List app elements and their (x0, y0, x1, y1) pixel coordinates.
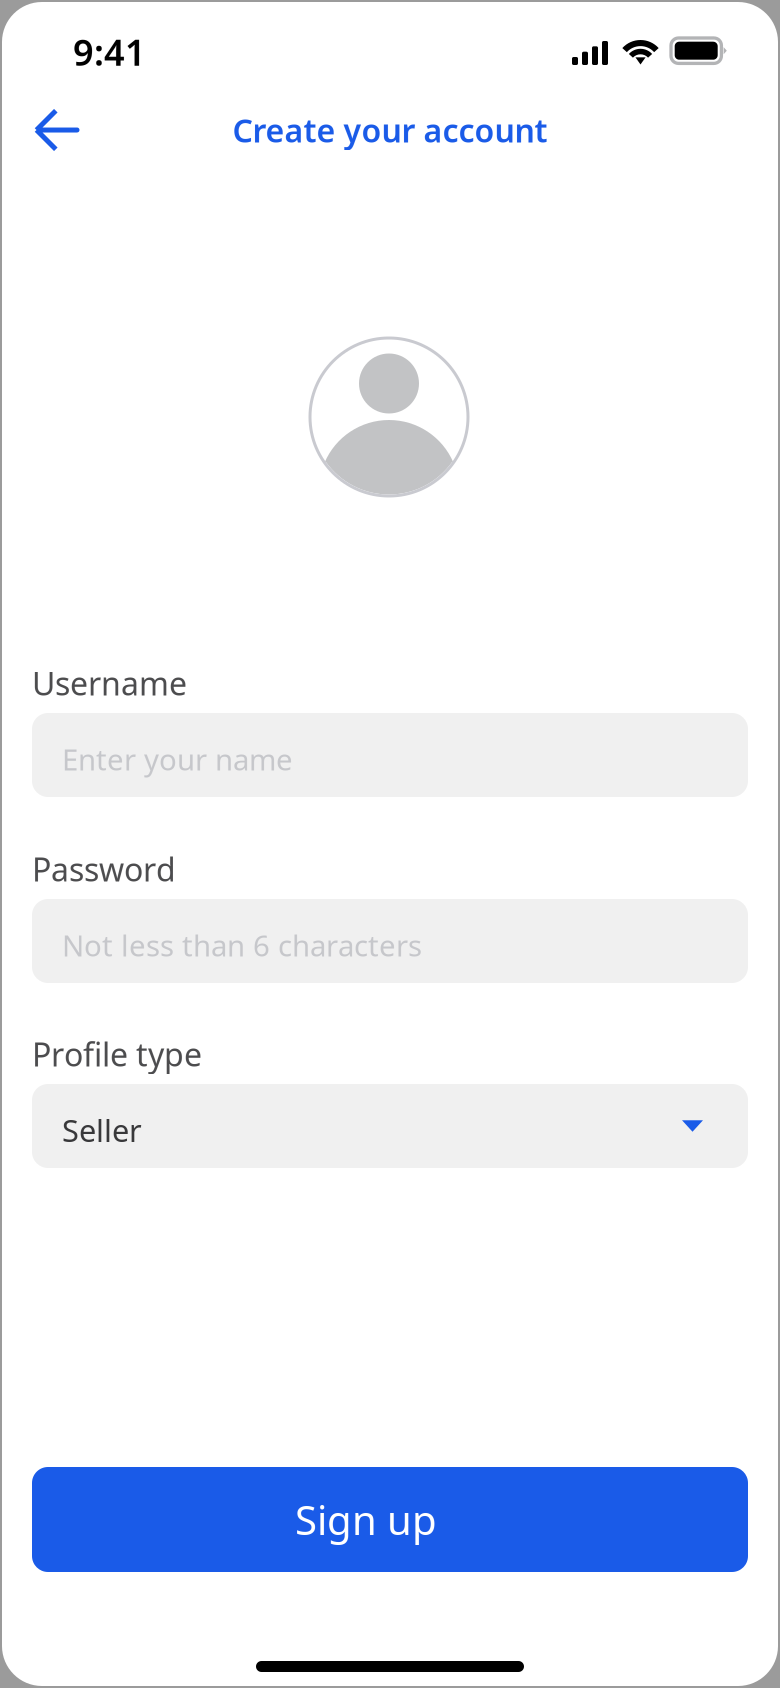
button[interactable]: Sign up (32, 1467, 748, 1572)
button[interactable]: Seller (32, 1084, 748, 1168)
staticText: Sign up (295, 1493, 437, 1546)
staticText: Not less than 6 characters (62, 925, 422, 964)
staticText: Create your account (232, 109, 547, 151)
staticText: Username (32, 662, 187, 704)
button[interactable]: Not less than 6 characters (32, 899, 748, 983)
button[interactable]: Enter your name (32, 713, 748, 797)
staticText: 9:41 (73, 28, 146, 76)
button[interactable]: Back (23, 99, 91, 161)
staticText: Enter your name (62, 739, 293, 778)
staticText: Profile type (32, 1033, 202, 1075)
staticText: Password (32, 848, 176, 890)
staticText: Seller (62, 1110, 142, 1150)
